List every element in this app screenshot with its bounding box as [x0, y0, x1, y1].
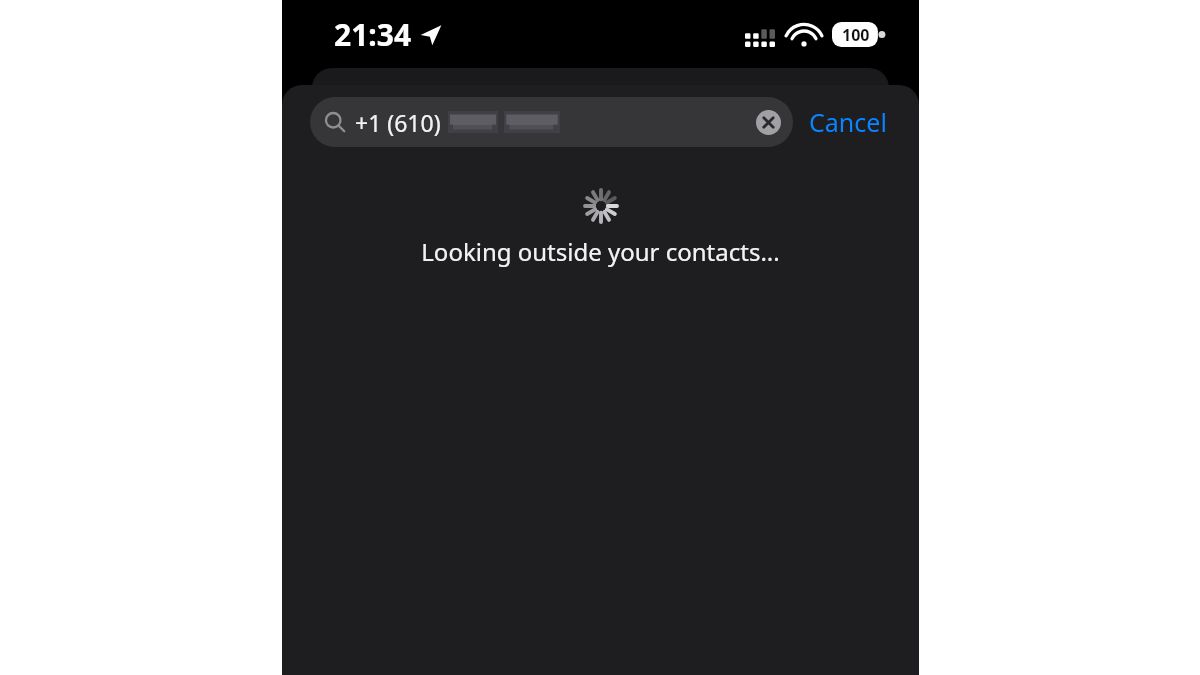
staticText: 21:34: [334, 14, 412, 55]
staticText: +1 (610): [355, 107, 441, 138]
staticText: Cancel: [809, 105, 887, 139]
button[interactable]: +1 (610): [310, 97, 793, 147]
staticText: Looking outside your contacts...: [421, 235, 780, 268]
staticText: 100: [842, 24, 870, 46]
button[interactable]: Clear text: [753, 107, 783, 137]
button[interactable]: Cancel: [805, 97, 891, 147]
